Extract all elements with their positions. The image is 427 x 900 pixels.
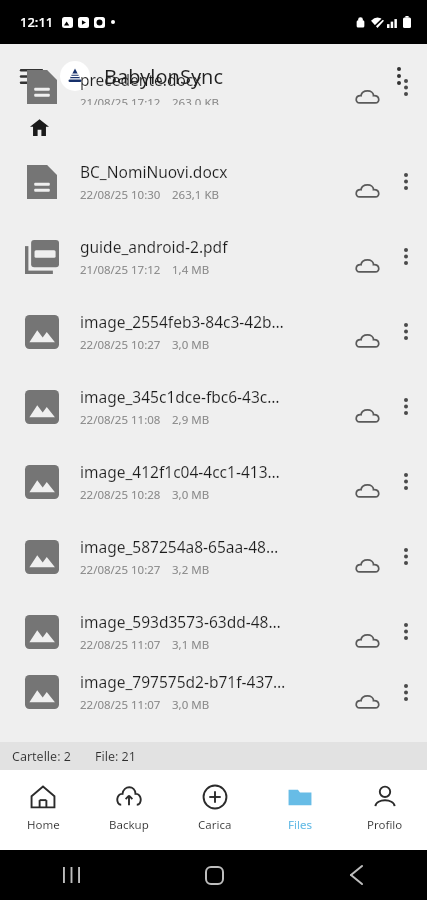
button[interactable]: Recents	[0, 850, 143, 900]
button[interactable]: Home	[0, 770, 86, 850]
button[interactable]: File options	[389, 369, 423, 444]
staticText: 3,0 MB	[172, 697, 210, 713]
button[interactable]: Files	[257, 770, 342, 850]
staticText: 3,1 MB	[172, 637, 210, 653]
staticText: Cartelle: 2	[12, 748, 71, 765]
staticText: 22/08/25 11:08	[80, 412, 161, 428]
button[interactable]: File options	[389, 669, 423, 715]
staticText: File: 21	[95, 748, 136, 765]
button[interactable]: Profilo	[342, 770, 427, 850]
staticText: image_2554feb3-84c3-42b…	[80, 311, 284, 332]
staticText: 22/08/25 10:30	[80, 187, 161, 203]
button[interactable]: guide_android-2.pdf	[0, 219, 427, 294]
button[interactable]: Back	[285, 850, 427, 900]
staticText: image_797575d2-b71f-437…	[80, 671, 286, 692]
staticText: 22/08/25 10:28	[80, 487, 161, 503]
button[interactable]: Home	[143, 850, 285, 900]
staticText: image_345c1dce-fbc6-43c…	[80, 386, 280, 407]
staticText: 22/08/25 10:27	[80, 562, 161, 578]
staticText: Carica	[198, 817, 232, 833]
button[interactable]: Home folder	[22, 110, 56, 144]
button[interactable]: File options	[389, 594, 423, 669]
staticText: 263,1 KB	[172, 187, 219, 203]
staticText: 3,2 MB	[172, 562, 210, 578]
staticText: image_412f1c04-4cc1-413…	[80, 461, 280, 482]
button[interactable]: BC_NomiNuovi.docx	[0, 144, 427, 219]
staticText: 22/08/25 10:27	[80, 337, 161, 353]
staticText: Profilo	[367, 817, 403, 833]
button[interactable]: image_412f1c04-4cc1-413…	[0, 444, 427, 519]
staticText: 21/08/25 17:12	[80, 262, 161, 278]
button[interactable]: Carica	[172, 770, 257, 850]
staticText: Backup	[109, 817, 149, 833]
button[interactable]: precedente.docx	[0, 108, 427, 144]
button[interactable]: image_797575d2-b71f-437…	[0, 669, 427, 715]
button[interactable]: image_345c1dce-fbc6-43c…	[0, 369, 427, 444]
staticText: guide_android-2.pdf	[80, 236, 228, 257]
staticText: 263,0 KB	[172, 95, 219, 105]
staticText: Files	[288, 817, 312, 833]
staticText: image_587254a8-65aa-48…	[80, 536, 279, 557]
button[interactable]: More options	[379, 56, 419, 96]
button[interactable]: File options	[389, 69, 423, 105]
button[interactable]: File options	[389, 219, 423, 294]
staticText: 2,9 MB	[172, 412, 210, 428]
button[interactable]: File options	[389, 519, 423, 594]
staticText: 3,0 MB	[172, 487, 210, 503]
staticText: 22/08/25 11:07	[80, 697, 161, 713]
staticText: BC_NomiNuovi.docx	[80, 161, 228, 182]
staticText: 12:11	[20, 13, 54, 31]
button[interactable]: image_2554feb3-84c3-42b…	[0, 294, 427, 369]
button[interactable]: Backup	[86, 770, 172, 850]
button[interactable]: image_593d3573-63dd-48…	[0, 594, 427, 669]
button[interactable]: File options	[389, 444, 423, 519]
staticText: 22/08/25 11:07	[80, 637, 161, 653]
button[interactable]: File options	[389, 294, 423, 369]
staticText: precedente.docx	[80, 69, 202, 90]
button[interactable]: image_587254a8-65aa-48…	[0, 519, 427, 594]
button[interactable]: Menu	[10, 55, 52, 97]
staticText: BabylonSync	[104, 63, 224, 90]
staticText: 21/08/25 17:12	[80, 95, 161, 105]
staticText: Home	[27, 817, 60, 833]
button[interactable]: File options	[389, 144, 423, 219]
staticText: 3,0 MB	[172, 337, 210, 353]
staticText: 1,4 MB	[172, 262, 210, 278]
staticText: image_593d3573-63dd-48…	[80, 611, 281, 632]
